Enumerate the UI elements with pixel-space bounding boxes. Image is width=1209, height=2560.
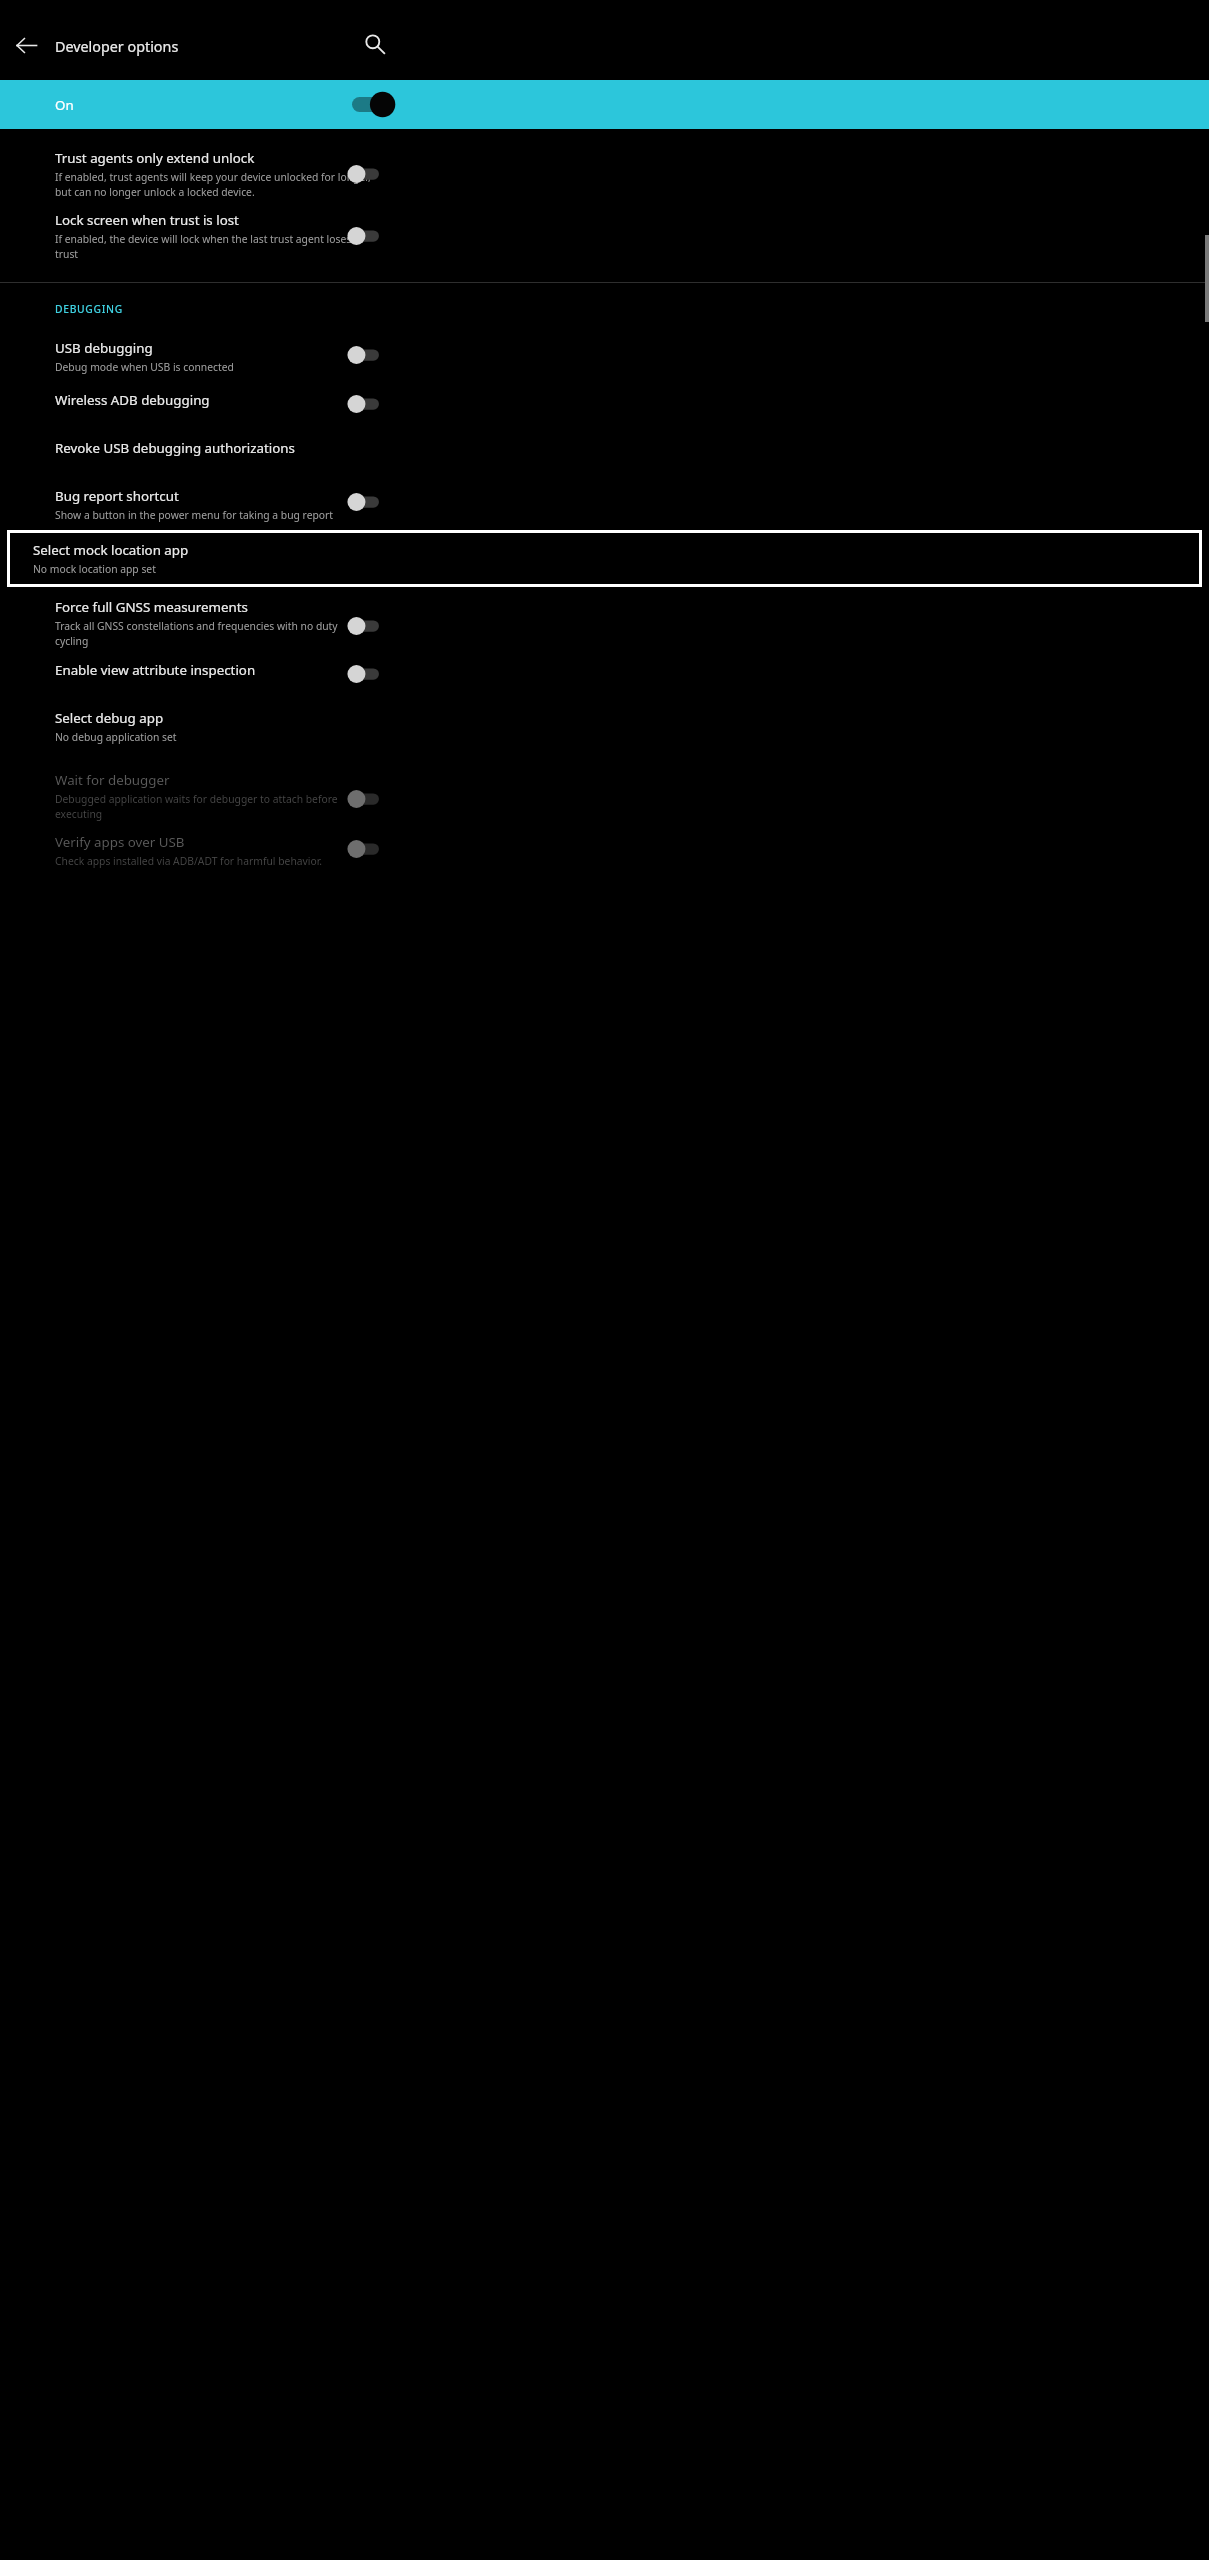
button[interactable]: Bug report shortcut xyxy=(347,487,394,517)
staticText: No debug application set xyxy=(55,730,177,744)
button[interactable]: Wait for debugger xyxy=(0,761,1209,833)
staticText: USB debugging xyxy=(55,339,153,357)
button[interactable]: Lock screen when trust is lost xyxy=(0,211,1209,282)
button[interactable]: Force full GNSS measurements xyxy=(0,587,1209,661)
staticText: No mock location app set xyxy=(33,562,156,576)
staticText: Trust agents only extend unlock xyxy=(55,149,255,167)
button[interactable]: Wait for debugger xyxy=(347,784,394,814)
staticText: If enabled, the device will lock when th… xyxy=(55,232,352,261)
staticText: Wait for debugger xyxy=(55,771,170,789)
staticText: Select mock location app xyxy=(33,541,189,559)
staticText: Debug mode when USB is connected xyxy=(55,360,234,374)
staticText: Check apps installed via ADB/ADT for har… xyxy=(55,854,323,868)
staticText: Show a button in the power menu for taki… xyxy=(55,508,334,522)
button[interactable]: USB debugging xyxy=(347,340,394,370)
button[interactable]: Force full GNSS measurements xyxy=(347,611,394,641)
button[interactable]: Search xyxy=(357,26,392,61)
staticText: Lock screen when trust is lost xyxy=(55,211,239,229)
button[interactable]: On xyxy=(0,80,1209,129)
button[interactable]: Enable view attribute inspection xyxy=(0,661,1209,709)
staticText: Force full GNSS measurements xyxy=(55,598,248,616)
button[interactable]: Enable view attribute inspection xyxy=(347,659,394,689)
button[interactable]: Select mock location app xyxy=(7,530,1202,587)
button[interactable]: Trust agents only extend unlock xyxy=(347,159,394,189)
staticText: Verify apps over USB xyxy=(55,833,185,851)
staticText: Developer options xyxy=(55,37,179,57)
staticText: Bug report shortcut xyxy=(55,487,179,505)
staticText: If enabled, trust agents will keep your … xyxy=(55,170,371,199)
staticText: Enable view attribute inspection xyxy=(55,661,256,679)
staticText: Revoke USB debugging authorizations xyxy=(55,439,295,457)
staticText: Wireless ADB debugging xyxy=(55,391,210,409)
button[interactable]: Select debug app xyxy=(0,709,1209,761)
staticText: Debugged application waits for debugger … xyxy=(55,792,338,821)
staticText: On xyxy=(55,96,74,114)
button[interactable]: Wireless ADB debugging xyxy=(0,391,1209,439)
button[interactable]: USB debugging xyxy=(0,339,1209,391)
button[interactable]: Revoke USB debugging authorizations xyxy=(0,439,1209,487)
button[interactable]: Back xyxy=(9,28,44,63)
button[interactable]: Trust agents only extend unlock xyxy=(0,129,1209,211)
button[interactable]: Lock screen when trust is lost xyxy=(347,221,394,251)
staticText: DEBUGGING xyxy=(55,302,123,316)
button[interactable]: Verify apps over USB xyxy=(347,834,394,864)
button[interactable]: Bug report shortcut xyxy=(0,487,1209,530)
button[interactable]: Wireless ADB debugging xyxy=(347,389,394,419)
staticText: Select debug app xyxy=(55,709,164,727)
staticText: Track all GNSS constellations and freque… xyxy=(55,619,338,648)
button[interactable]: Verify apps over USB xyxy=(0,833,1209,886)
